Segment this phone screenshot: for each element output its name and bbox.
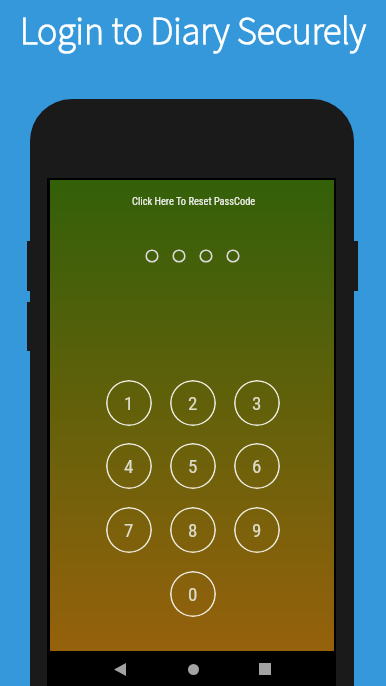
button[interactable]: 5: [170, 443, 216, 489]
staticText: 6: [252, 455, 262, 477]
staticText: 0: [188, 583, 198, 605]
staticText: 4: [124, 455, 134, 477]
button[interactable]: 4: [106, 443, 152, 489]
button[interactable]: 6: [234, 443, 280, 489]
button[interactable]: 9: [234, 507, 280, 553]
staticText: 2: [188, 392, 198, 414]
button[interactable]: 3: [234, 380, 280, 426]
button[interactable]: Home: [180, 656, 206, 682]
button[interactable]: 1: [106, 380, 152, 426]
button[interactable]: 8: [170, 507, 216, 553]
staticText: 8: [188, 519, 198, 541]
button[interactable]: Recent apps: [252, 656, 278, 682]
button[interactable]: Click Here To Reset PassCode: [126, 193, 262, 209]
staticText: Click Here To Reset PassCode: [132, 195, 256, 207]
staticText: 3: [252, 392, 262, 414]
button[interactable]: 0: [170, 571, 216, 617]
staticText: 5: [188, 455, 198, 477]
button[interactable]: Back: [107, 656, 133, 682]
staticText: 7: [124, 519, 134, 541]
staticText: 1: [124, 392, 134, 414]
button[interactable]: 2: [170, 380, 216, 426]
button[interactable]: 7: [106, 507, 152, 553]
staticText: Login to Diary Securely: [20, 5, 366, 59]
staticText: 9: [252, 519, 262, 541]
